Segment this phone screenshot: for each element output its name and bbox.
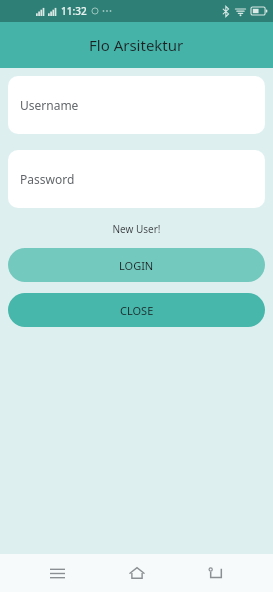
button[interactable]: Home: [115, 554, 159, 592]
button[interactable]: Password: [8, 150, 265, 208]
button[interactable]: New User!: [0, 220, 273, 238]
button[interactable]: LOGIN: [8, 248, 265, 282]
staticText: Username: [20, 97, 79, 113]
staticText: CLOSE: [120, 303, 154, 318]
button[interactable]: Username: [8, 76, 265, 134]
button[interactable]: Back: [194, 554, 238, 592]
staticText: LOGIN: [119, 258, 154, 273]
staticText: 11:32: [61, 4, 87, 18]
staticText: Flo Arsitektur: [89, 35, 184, 55]
button[interactable]: Recent apps: [35, 554, 79, 592]
button[interactable]: CLOSE: [8, 293, 265, 327]
staticText: Password: [20, 171, 75, 187]
